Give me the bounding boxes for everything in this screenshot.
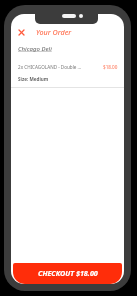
button[interactable]: CHECKOUT $18.00 bbox=[13, 263, 122, 284]
button[interactable]: Chicago Deli bbox=[18, 45, 52, 53]
staticText: 2x CHICAGOLAND - Double ... bbox=[18, 64, 86, 70]
staticText: Your Order bbox=[36, 27, 72, 37]
staticText: Size: Medium bbox=[18, 76, 49, 82]
button[interactable]: Close bbox=[15, 26, 28, 39]
staticText: $18.00 bbox=[103, 64, 118, 70]
staticText: CHECKOUT $18.00 bbox=[38, 268, 98, 278]
